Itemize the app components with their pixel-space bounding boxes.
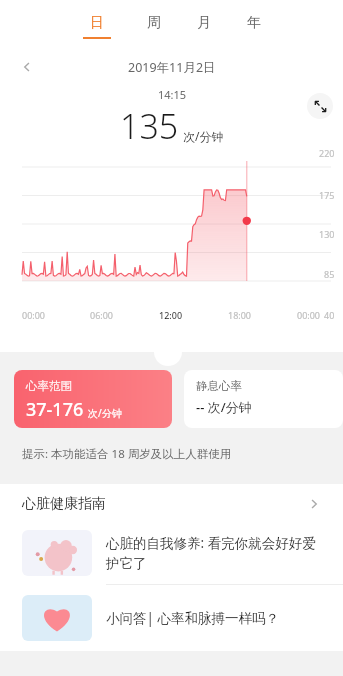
staticText: 2019年11月2日 — [128, 59, 216, 76]
button[interactable]: Expand chart — [307, 93, 333, 119]
button[interactable]: Previous day — [14, 55, 40, 79]
staticText: 00:00 — [297, 309, 321, 321]
staticText: -- 次/分钟 — [196, 398, 252, 416]
button[interactable]: 心脏健康指南 — [0, 484, 343, 524]
button[interactable]: 心率范围 — [14, 370, 172, 428]
staticText: 月 — [197, 14, 211, 32]
staticText: 周 — [147, 14, 161, 32]
staticText: 130 — [319, 228, 335, 240]
button[interactable]: 月 — [179, 10, 229, 43]
staticText: 14:15 — [158, 87, 187, 102]
staticText: 18:00 — [228, 309, 252, 321]
staticText: 次/分钟 — [183, 128, 224, 144]
button[interactable]: 小问答| 心率和脉搏一样吗？ — [0, 585, 343, 651]
staticText: 小问答| 心率和脉搏一样吗？ — [106, 609, 279, 627]
staticText: 次/分钟 — [88, 406, 122, 420]
staticText: 静息心率 — [196, 379, 242, 393]
staticText: 135 — [120, 103, 179, 149]
button[interactable]: 心脏的自我修养: 看完你就会好好爱护它了 — [0, 524, 343, 584]
staticText: 37-176 — [26, 397, 84, 422]
staticText: 06:00 — [90, 309, 114, 321]
staticText: 心脏的自我修养: 看完你就会好好爱护它了 — [106, 534, 325, 572]
button[interactable]: 周 — [129, 10, 179, 43]
button[interactable]: 静息心率 — [184, 370, 343, 428]
staticText: 00:00 — [22, 309, 46, 321]
staticText: 40 — [324, 309, 335, 321]
staticText: 日 — [90, 14, 104, 32]
button[interactable]: 日 — [65, 10, 129, 43]
staticText: 提示: 本功能适合 18 周岁及以上人群使用 — [22, 446, 232, 462]
button[interactable]: 年 — [229, 10, 279, 43]
staticText: 心脏健康指南 — [22, 495, 106, 513]
staticText: 175 — [319, 189, 335, 201]
staticText: 年 — [247, 14, 261, 32]
staticText: 85 — [324, 268, 335, 280]
staticText: 心率范围 — [26, 379, 72, 393]
staticText: 220 — [319, 147, 335, 159]
staticText: 12:00 — [159, 309, 183, 321]
